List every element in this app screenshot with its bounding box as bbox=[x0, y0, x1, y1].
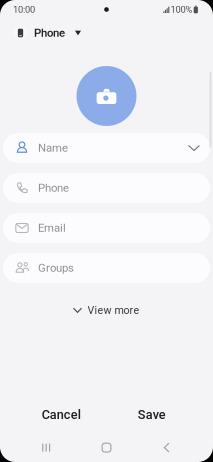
staticText: 100% bbox=[171, 4, 193, 15]
button[interactable]: Groups bbox=[3, 253, 210, 283]
staticText: Groups bbox=[38, 261, 74, 275]
staticText: Phone bbox=[38, 181, 69, 195]
button[interactable]: Email bbox=[3, 213, 210, 243]
button[interactable]: Recent apps bbox=[16, 436, 76, 460]
button[interactable]: Phone bbox=[3, 173, 210, 203]
staticText: Save bbox=[138, 407, 166, 422]
staticText: Email bbox=[38, 221, 66, 235]
button[interactable]: Home bbox=[76, 435, 137, 460]
staticText: Phone bbox=[34, 26, 65, 40]
button[interactable]: View more bbox=[63, 299, 149, 321]
button[interactable]: Name bbox=[3, 133, 210, 163]
staticText: Cancel bbox=[42, 407, 81, 422]
button[interactable]: Cancel bbox=[16, 398, 106, 431]
staticText: Name bbox=[38, 141, 68, 155]
button[interactable]: Add photo bbox=[76, 66, 136, 126]
button[interactable]: Phone bbox=[0, 20, 89, 46]
button[interactable]: Save bbox=[106, 398, 197, 431]
staticText: 10:00 bbox=[13, 4, 35, 15]
button[interactable]: Back bbox=[137, 435, 197, 460]
staticText: View more bbox=[87, 304, 139, 316]
